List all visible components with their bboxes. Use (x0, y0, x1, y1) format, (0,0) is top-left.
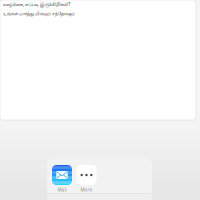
staticText: Mail (57, 187, 66, 192)
staticText: உங்கள் மார்த்து மிகவும் சந்தோஷம் (3, 11, 75, 17)
staticText: More (80, 187, 92, 192)
button[interactable]: More (76, 165, 96, 192)
staticText: வாழ்க்கை, எப்படி இருக்கிறீர்கள்? (3, 1, 70, 8)
button[interactable]: Mail (52, 165, 72, 192)
